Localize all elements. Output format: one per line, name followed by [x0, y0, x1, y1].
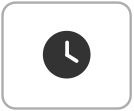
- button[interactable]: Clock: [0, 0, 134, 111]
